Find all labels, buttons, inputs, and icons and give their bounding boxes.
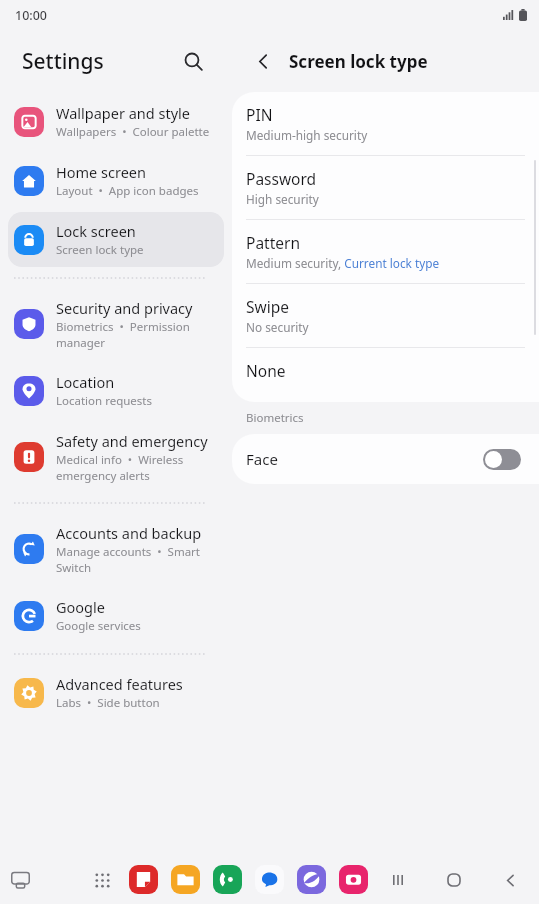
- staticText: Safety and emergency: [56, 431, 208, 451]
- staticText: High security: [246, 191, 319, 207]
- button[interactable]: Password: [232, 156, 539, 220]
- staticText: Medium-high security: [246, 127, 368, 143]
- button[interactable]: Recent apps: [383, 865, 413, 895]
- staticText: 10:00: [15, 7, 48, 24]
- button[interactable]: Camera: [339, 865, 368, 894]
- staticText: Location requests: [56, 393, 152, 409]
- staticText: Home screen: [56, 162, 146, 182]
- button[interactable]: Home: [439, 865, 469, 895]
- staticText: Google: [56, 597, 105, 617]
- staticText: Google services: [56, 618, 141, 634]
- button[interactable]: Internet: [297, 865, 326, 894]
- staticText: Face: [246, 449, 483, 469]
- button[interactable]: Files: [171, 865, 200, 894]
- staticText: Layout • App icon badges: [56, 183, 199, 199]
- staticText: Labs • Side button: [56, 695, 160, 711]
- staticText: Security and privacy: [56, 298, 193, 318]
- staticText: Wallpaper and style: [56, 103, 190, 123]
- button[interactable]: Wallpaper and style: [8, 94, 224, 149]
- staticText: Location: [56, 372, 115, 392]
- button[interactable]: Swipe: [232, 284, 539, 348]
- staticText: Pattern: [246, 232, 300, 253]
- button[interactable]: Pattern: [232, 220, 539, 284]
- button[interactable]: Phone: [213, 865, 242, 894]
- staticText: Lock screen: [56, 221, 136, 241]
- staticText: No security: [246, 319, 309, 335]
- staticText: Medium security, Current lock type: [246, 255, 440, 271]
- button[interactable]: Messages: [255, 865, 284, 894]
- button[interactable]: Face: [232, 434, 539, 484]
- staticText: Wallpapers • Colour palette: [56, 124, 210, 140]
- staticText: None: [246, 360, 286, 381]
- button[interactable]: Face unlock toggle: [483, 449, 521, 470]
- button[interactable]: Notes: [129, 865, 158, 894]
- button[interactable]: Google: [8, 588, 224, 643]
- staticText: Medical info • Wireless emergency alerts: [56, 452, 214, 483]
- button[interactable]: None: [232, 348, 539, 402]
- staticText: Biometrics • Permission manager: [56, 319, 214, 350]
- button[interactable]: Recents: [4, 864, 36, 896]
- button[interactable]: Advanced features: [8, 665, 224, 720]
- button[interactable]: Safety and emergency: [8, 422, 224, 492]
- button[interactable]: PIN: [232, 92, 539, 156]
- staticText: Biometrics: [246, 410, 304, 426]
- staticText: Screen lock type: [289, 50, 428, 73]
- staticText: Accounts and backup: [56, 523, 202, 543]
- button[interactable]: Search: [176, 44, 210, 78]
- staticText: Advanced features: [56, 674, 183, 694]
- button[interactable]: Security and privacy: [8, 289, 224, 359]
- button[interactable]: Back: [246, 44, 280, 78]
- staticText: Screen lock type: [56, 242, 144, 258]
- staticText: Settings: [22, 47, 104, 76]
- button[interactable]: Accounts and backup: [8, 514, 224, 584]
- button[interactable]: Back: [495, 865, 525, 895]
- staticText: Manage accounts • Smart Switch: [56, 544, 214, 575]
- staticText: Password: [246, 168, 317, 189]
- staticText: PIN: [246, 104, 273, 125]
- staticText: Swipe: [246, 296, 289, 317]
- button[interactable]: Location: [8, 363, 224, 418]
- button[interactable]: Lock screen: [8, 212, 224, 267]
- button[interactable]: Apps: [88, 866, 116, 894]
- button[interactable]: Home screen: [8, 153, 224, 208]
